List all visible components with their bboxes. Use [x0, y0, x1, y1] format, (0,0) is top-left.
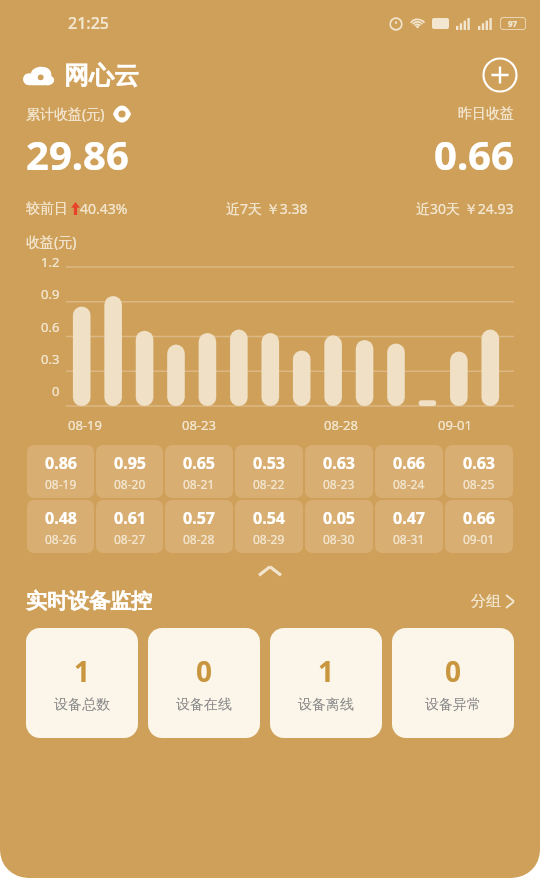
staticText: 昨日收益 — [458, 105, 514, 123]
button[interactable]: 1 — [270, 628, 382, 738]
staticText: 08-28 — [324, 416, 358, 434]
staticText: 近7天 ￥3.38 — [226, 199, 308, 218]
staticText: 较前日 — [26, 200, 68, 218]
staticText: 0.48 — [45, 507, 77, 529]
staticText: 累计收益(元) — [26, 104, 105, 123]
staticText: 0 — [52, 382, 60, 400]
staticText: 0.3 — [41, 350, 60, 368]
staticText: 实时设备监控 — [26, 588, 152, 614]
staticText: 设备离线 — [298, 696, 354, 714]
button[interactable]: 分组 — [471, 592, 514, 611]
staticText: 网心云 — [64, 60, 139, 91]
button[interactable]: 0.66 — [445, 500, 513, 553]
button[interactable]: 0.47 — [375, 500, 443, 553]
button[interactable]: 0 — [148, 628, 260, 738]
button[interactable]: 累计收益(元) — [26, 104, 131, 123]
staticText: 08-31 — [393, 531, 425, 547]
staticText: 0 — [445, 652, 462, 690]
staticText: 08-23 — [182, 416, 216, 434]
staticText: 08-19 — [68, 416, 102, 434]
staticText: 收益(元) — [26, 232, 77, 251]
staticText: 08-25 — [463, 476, 495, 492]
staticText: 08-24 — [393, 476, 425, 492]
staticText: 97 — [508, 18, 518, 29]
button[interactable]: 0.48 — [27, 500, 94, 553]
staticText: 0 — [196, 652, 213, 690]
staticText: 0.47 — [393, 507, 425, 529]
staticText: 设备异常 — [425, 696, 481, 714]
staticText: 0.05 — [323, 507, 355, 529]
staticText: 08-21 — [183, 476, 215, 492]
button[interactable]: 0.53 — [235, 445, 303, 498]
staticText: 设备在线 — [176, 696, 232, 714]
staticText: 0.66 — [393, 452, 425, 474]
button[interactable]: 0.54 — [235, 500, 303, 553]
staticText: 08-23 — [323, 476, 355, 492]
staticText: 分组 — [471, 592, 501, 611]
staticText: 0.66 — [434, 127, 514, 181]
staticText: 0.65 — [183, 452, 215, 474]
staticText: 近30天 ￥24.93 — [416, 199, 514, 218]
staticText: 1 — [318, 652, 335, 690]
staticText: 0.66 — [463, 507, 495, 529]
staticText: 08-27 — [114, 531, 146, 547]
staticText: 0.61 — [114, 507, 146, 529]
staticText: 0.63 — [463, 452, 495, 474]
staticText: 0.63 — [323, 452, 355, 474]
staticText: 设备总数 — [54, 696, 110, 714]
staticText: 0.9 — [41, 285, 60, 303]
staticText: 0.53 — [253, 452, 285, 474]
staticText: 08-20 — [114, 476, 146, 492]
button[interactable]: 1 — [26, 628, 138, 738]
button[interactable]: 0.05 — [305, 500, 373, 553]
button[interactable]: 0.65 — [165, 445, 233, 498]
button[interactable]: Add — [482, 57, 518, 93]
staticText: 08-29 — [253, 531, 285, 547]
button[interactable]: 0.63 — [305, 445, 373, 498]
staticText: 08-22 — [253, 476, 285, 492]
staticText: 08-19 — [45, 476, 77, 492]
button[interactable]: 0.66 — [375, 445, 443, 498]
staticText: 08-26 — [45, 531, 77, 547]
staticText: 29.86 — [26, 127, 129, 181]
staticText: 0.54 — [253, 507, 285, 529]
button[interactable]: Collapse — [0, 554, 540, 588]
button[interactable]: 0.86 — [27, 445, 94, 498]
button[interactable]: 0 — [392, 628, 514, 738]
staticText: 21:25 — [68, 12, 109, 34]
staticText: 0.57 — [183, 507, 215, 529]
staticText: 0.6 — [41, 318, 60, 336]
button[interactable]: 0.95 — [96, 445, 163, 498]
staticText: 0.86 — [45, 452, 77, 474]
staticText: 1 — [74, 652, 91, 690]
staticText: 40.43% — [80, 199, 128, 218]
staticText: 08-28 — [183, 531, 215, 547]
button[interactable]: 0.61 — [96, 500, 163, 553]
button[interactable]: 0.57 — [165, 500, 233, 553]
staticText: 08-30 — [323, 531, 355, 547]
staticText: 0.95 — [114, 452, 146, 474]
staticText: 1.2 — [41, 253, 60, 271]
button[interactable]: 0.63 — [445, 445, 513, 498]
staticText: 09-01 — [438, 416, 472, 434]
staticText: 09-01 — [463, 531, 495, 547]
